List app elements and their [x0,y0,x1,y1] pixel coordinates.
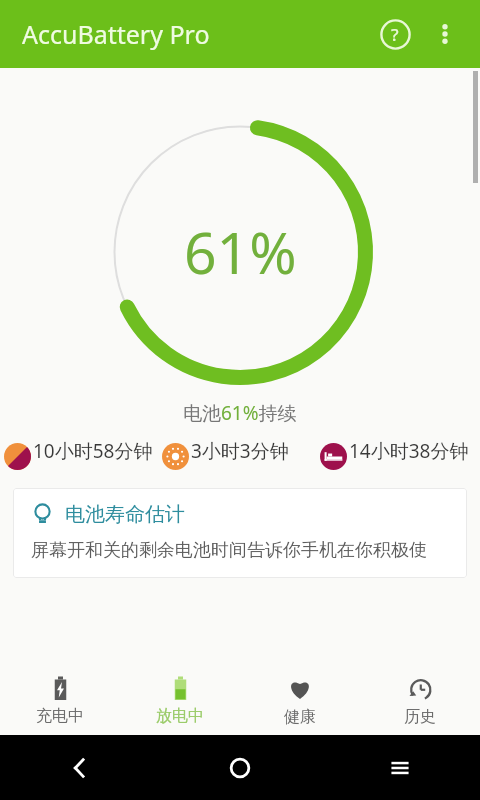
staticText: 屏幕开和关的剩余电池时间告诉你手机在你积极使 [31,539,427,562]
staticText: 电池寿命估计 [65,502,185,527]
button[interactable]: 电池寿命估计 [13,488,467,578]
button[interactable]: Recent apps [320,735,480,800]
button[interactable]: Back [0,735,160,800]
button[interactable]: Home [160,735,320,800]
staticText: 放电中 [156,706,204,726]
staticText: 电池61%持续 [183,400,297,426]
button[interactable]: 14小时38分钟 [320,438,478,470]
staticText: 14小时38分钟 [349,438,469,464]
staticText: 3小时3分钟 [191,438,289,464]
button[interactable]: Help [370,9,420,59]
button[interactable]: 3小时3分钟 [162,438,320,470]
button[interactable]: 放电中 [120,667,240,735]
button[interactable]: More options [420,9,470,59]
staticText: 充电中 [36,706,84,726]
staticText: AccuBattery Pro [22,17,210,51]
staticText: 健康 [284,707,316,727]
staticText: 61% [184,213,297,291]
button[interactable]: 历史 [360,667,480,735]
button[interactable]: 10小时58分钟 [4,438,162,470]
staticText: 历史 [404,707,436,727]
button[interactable]: 充电中 [0,667,120,735]
staticText: ? [391,23,399,46]
button[interactable]: 健康 [240,667,360,735]
staticText: 10小时58分钟 [33,438,153,464]
